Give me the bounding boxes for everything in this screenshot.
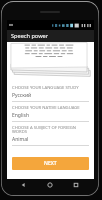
button[interactable]: Recent apps [63, 179, 89, 190]
staticText: CHOOSE YOUR NATIVE LANGUAGE [12, 105, 80, 111]
button[interactable]: CHOOSE YOUR NATIVE LANGUAGE [12, 102, 89, 122]
staticText: Speech power [11, 32, 48, 40]
button[interactable]: Home [37, 179, 63, 190]
button[interactable]: CHOOSE A SUBJECT OF FOREIGN WORDS [12, 122, 89, 146]
staticText: English [12, 112, 30, 119]
staticText: Русский [12, 92, 32, 99]
staticText: NEXT [44, 160, 57, 167]
staticText: CHOOSE YOUR LANGUAGE STUDY [12, 85, 79, 91]
button[interactable]: NEXT [12, 157, 89, 170]
staticText: Animal [12, 136, 29, 143]
staticText: CHOOSE A SUBJECT OF FOREIGN WORDS [12, 125, 89, 135]
button[interactable]: Speech power [7, 30, 94, 42]
button[interactable]: CHOOSE YOUR LANGUAGE STUDY [12, 82, 89, 102]
button[interactable]: Back [11, 179, 37, 190]
